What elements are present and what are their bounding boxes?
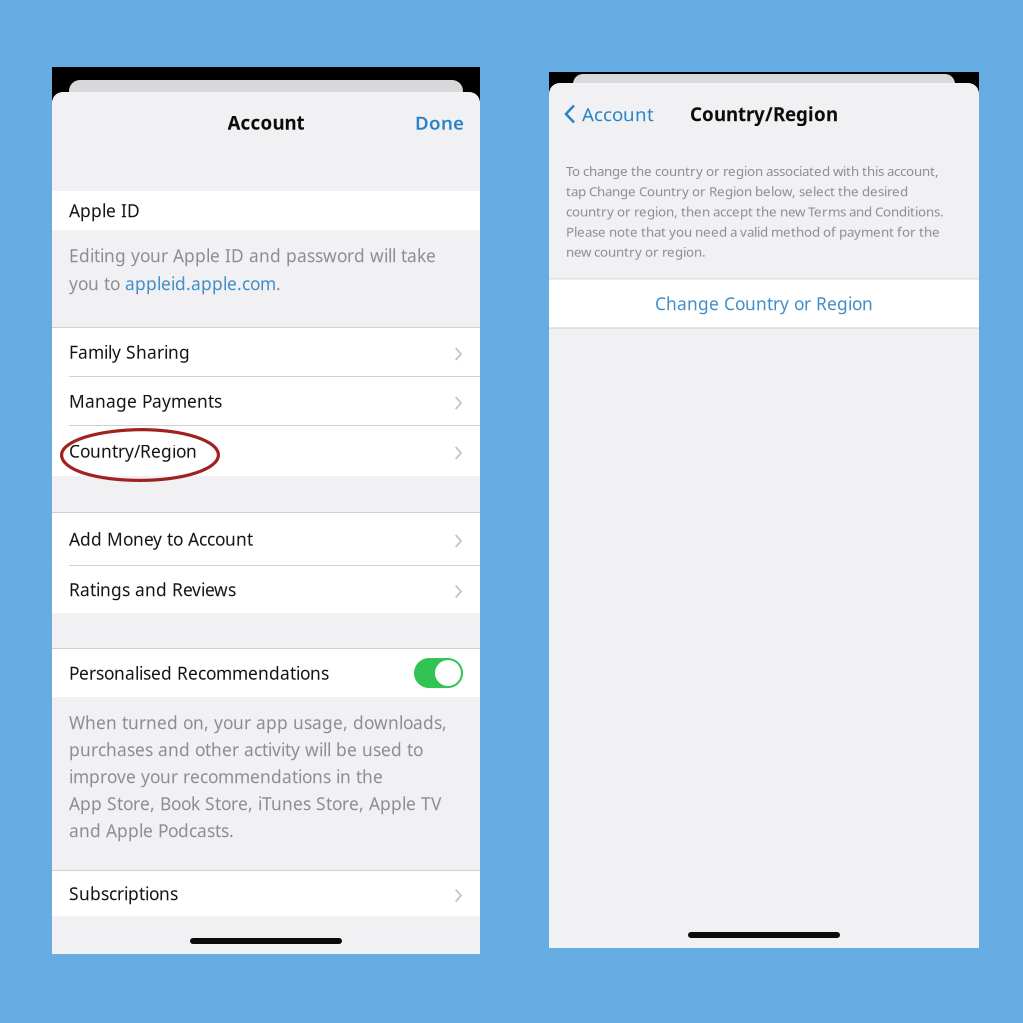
staticText: Account <box>582 102 654 126</box>
staticText: and Apple Podcasts. <box>69 819 234 842</box>
staticText: Apple ID <box>69 199 140 222</box>
staticText: new country or region. <box>566 243 706 260</box>
button[interactable]: Family Sharing <box>52 328 480 376</box>
staticText: purchases and other activity will be use… <box>69 738 423 761</box>
staticText: Subscriptions <box>69 882 178 905</box>
staticText: Family Sharing <box>69 340 190 363</box>
staticText: Done <box>415 110 464 135</box>
staticText: Change Country or Region <box>655 292 873 315</box>
button[interactable]: Country/Region <box>52 426 480 476</box>
staticText: Country/Region <box>690 102 838 126</box>
staticText: Add Money to Account <box>69 527 253 550</box>
button[interactable]: Account <box>549 92 664 136</box>
staticText: improve your recommendations in the <box>69 765 383 788</box>
staticText: Account <box>227 110 304 135</box>
button[interactable]: Change Country or Region <box>549 279 979 327</box>
staticText: you to <box>69 272 125 295</box>
button[interactable]: Ratings and Reviews <box>52 566 480 613</box>
staticText: Personalised Recommendations <box>69 661 329 684</box>
staticText: App Store, Book Store, iTunes Store, App… <box>69 792 441 815</box>
button[interactable]: appleid.apple.com <box>125 272 276 295</box>
button[interactable]: Subscriptions <box>52 871 480 916</box>
button[interactable]: Manage Payments <box>52 377 480 425</box>
staticText: Ratings and Reviews <box>69 578 236 601</box>
staticText: Country/Region <box>69 439 197 462</box>
staticText: Manage Payments <box>69 389 222 412</box>
button[interactable]: Done <box>399 101 480 144</box>
staticText: . <box>276 272 281 295</box>
staticText: country or region, then accept the new T… <box>566 202 944 220</box>
staticText: Please note that you need a valid method… <box>566 223 940 240</box>
button[interactable]: Personalised Recommendations, on <box>414 658 463 688</box>
staticText: appleid.apple.com <box>125 272 276 295</box>
staticText: tap Change Country or Region below, sele… <box>566 182 908 200</box>
staticText: Editing your Apple ID and password will … <box>69 244 436 267</box>
staticText: When turned on, your app usage, download… <box>69 711 447 734</box>
button[interactable]: Add Money to Account <box>52 513 480 565</box>
staticText: To change the country or region associat… <box>566 162 939 180</box>
button[interactable]: Apple ID <box>52 191 480 230</box>
